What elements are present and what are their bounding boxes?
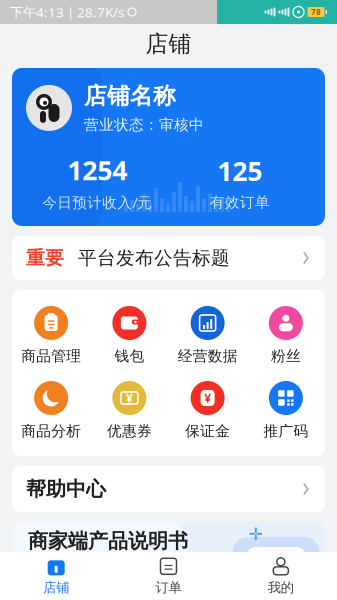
staticText: 帮助中心 [26, 477, 106, 501]
staticText: 经营数据 [178, 347, 238, 365]
staticText: 下午4:13 | 28.7K/s [10, 3, 124, 21]
button[interactable]: 店铺 [0, 550, 112, 600]
staticText: 商品分析 [21, 422, 81, 440]
staticText: 有效订单 [210, 193, 270, 211]
button[interactable]: 经营数据 [168, 306, 247, 365]
staticText: ¥ [204, 390, 211, 406]
button[interactable]: 重要 [12, 236, 325, 280]
staticText: 营业状态：审核中 [84, 116, 204, 134]
staticText: 我的 [268, 579, 294, 596]
button[interactable]: 我的 [225, 550, 337, 600]
button[interactable]: 商品分析 [12, 381, 90, 440]
staticText: 店铺 [145, 30, 191, 58]
staticText: 重要 [26, 246, 64, 269]
staticText: ✛ [248, 524, 263, 544]
staticText: 商品管理 [21, 347, 81, 365]
button[interactable]: 商品管理 [12, 306, 90, 365]
button[interactable]: 钱包 [90, 306, 168, 365]
staticText: 店铺名称 [84, 82, 176, 110]
button[interactable]: ¥ [90, 381, 168, 440]
staticText: 今日预计收入/元 [42, 192, 152, 212]
staticText: 125 [217, 153, 262, 188]
staticText: 钱包 [114, 347, 144, 365]
staticText: 优惠券 [107, 422, 152, 440]
staticText: 保证金 [185, 422, 230, 440]
staticText: 订单 [155, 579, 181, 596]
button[interactable]: ¥ [168, 381, 247, 440]
staticText: 商家端产品说明书 [28, 529, 188, 553]
staticText: 78 [311, 7, 321, 17]
staticText: 店铺 [43, 579, 69, 596]
button[interactable]: ✛ [12, 522, 325, 594]
button[interactable]: 订单 [112, 550, 225, 600]
staticText: 日常经营必备 [28, 565, 118, 583]
button[interactable]: 帮助中心 [12, 466, 325, 512]
staticText: ¥ [126, 390, 133, 406]
button[interactable]: 推广码 [247, 381, 325, 440]
staticText: 粉丝 [271, 347, 301, 365]
button[interactable]: 粉丝 [247, 306, 325, 365]
staticText: 平台发布公告标题 [78, 246, 230, 269]
staticText: 点击查看 › [137, 565, 196, 583]
staticText: 1254 [67, 152, 127, 187]
staticText: 推广码 [263, 422, 308, 440]
